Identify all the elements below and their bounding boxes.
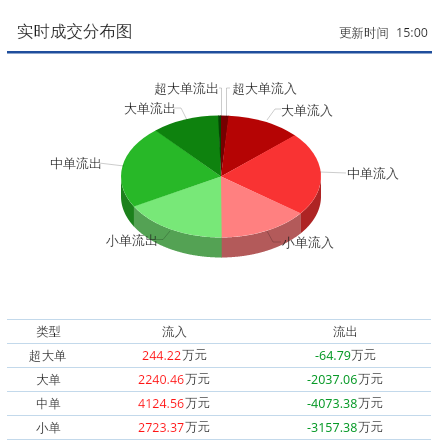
- staticText: 类型: [36, 324, 61, 340]
- button[interactable]: 大单: [0, 368, 438, 392]
- staticText: -2037.06: [307, 371, 358, 388]
- staticText: 4124.56: [138, 395, 185, 412]
- staticText: 万元: [185, 395, 210, 411]
- staticText: 大单: [36, 372, 61, 388]
- staticText: 中单: [36, 396, 61, 412]
- staticText: 超大单流入: [232, 80, 297, 96]
- staticText: 万元: [351, 347, 376, 363]
- button[interactable]: 中单: [0, 392, 438, 416]
- staticText: -3157.38: [307, 419, 358, 436]
- staticText: 大单流入: [281, 102, 333, 118]
- staticText: 万元: [185, 371, 210, 387]
- button[interactable]: 类型: [0, 320, 438, 344]
- staticText: 实时成交分布图: [17, 21, 133, 42]
- button[interactable]: 小单: [0, 416, 438, 440]
- staticText: 小单流入: [282, 234, 334, 250]
- staticText: 万元: [185, 419, 210, 435]
- staticText: 更新时间: [339, 25, 389, 41]
- staticText: 2240.46: [138, 371, 185, 388]
- staticText: 流出: [333, 324, 358, 340]
- staticText: 中单流出: [50, 155, 102, 171]
- staticText: 2723.37: [138, 419, 185, 436]
- staticText: 流入: [162, 324, 187, 340]
- staticText: 244.22: [142, 347, 182, 364]
- button[interactable]: 超大单: [0, 344, 438, 368]
- staticText: 万元: [358, 371, 383, 387]
- staticText: 小单流出: [106, 232, 158, 248]
- staticText: 15:00: [396, 24, 428, 41]
- staticText: 万元: [358, 419, 383, 435]
- staticText: 超大单: [29, 348, 67, 364]
- staticText: 万元: [182, 347, 207, 363]
- staticText: 大单流出: [124, 100, 176, 116]
- staticText: -4073.38: [307, 395, 358, 412]
- staticText: 小单: [36, 420, 61, 436]
- staticText: -64.79: [315, 347, 351, 364]
- staticText: 超大单流出: [154, 80, 219, 96]
- staticText: 中单流入: [347, 165, 399, 181]
- staticText: 万元: [358, 395, 383, 411]
